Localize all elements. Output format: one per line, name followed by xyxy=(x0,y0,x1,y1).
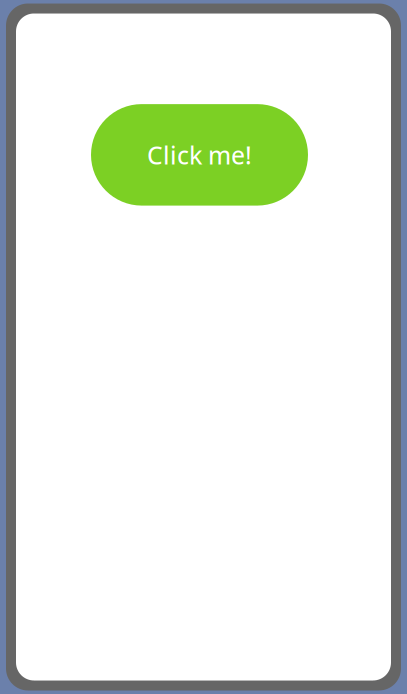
button[interactable]: Click me! xyxy=(91,104,308,206)
staticText: Click me! xyxy=(147,138,252,172)
